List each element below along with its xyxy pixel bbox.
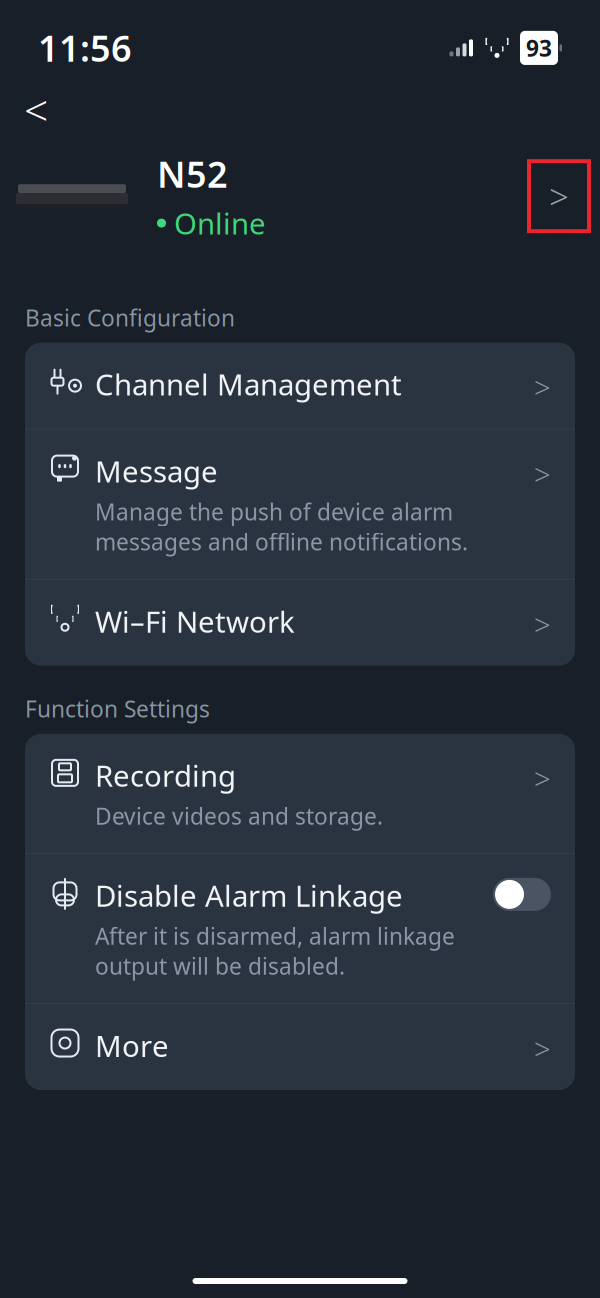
button[interactable]: Wi–Fi Network — [25, 580, 575, 666]
button[interactable]: Recording — [25, 734, 575, 853]
button[interactable]: More — [25, 1004, 575, 1090]
staticText: > — [534, 455, 551, 494]
button[interactable]: Disable Alarm Linkage — [25, 854, 575, 1003]
button[interactable]: Back — [24, 88, 68, 132]
button[interactable]: Channel Management — [25, 343, 575, 429]
staticText: Wi–Fi Network — [95, 602, 295, 641]
staticText: > — [534, 759, 551, 798]
staticText: > — [534, 605, 551, 644]
staticText: More — [95, 1026, 169, 1065]
staticText: Basic Configuration — [25, 303, 235, 333]
staticText: 11:56 — [38, 24, 132, 72]
staticText: > — [534, 1029, 551, 1068]
staticText: After it is disarmed, alarm linkage outp… — [95, 921, 455, 981]
staticText: > — [549, 173, 569, 219]
staticText: 93 — [526, 33, 552, 63]
staticText: N52 — [157, 150, 228, 198]
staticText: Channel Management — [95, 365, 402, 404]
button[interactable]: Message — [25, 430, 575, 579]
button[interactable]: N52 — [0, 132, 600, 243]
staticText: Function Settings — [25, 694, 210, 724]
staticText: Manage the push of device alarm messages… — [95, 497, 468, 557]
staticText: Recording — [95, 756, 236, 795]
staticText: < — [24, 81, 48, 138]
staticText: Disable Alarm Linkage — [95, 876, 403, 915]
staticText: Online — [174, 204, 266, 243]
staticText: > — [534, 368, 551, 407]
staticText: Device videos and storage. — [95, 801, 383, 831]
staticText: Message — [95, 452, 218, 491]
